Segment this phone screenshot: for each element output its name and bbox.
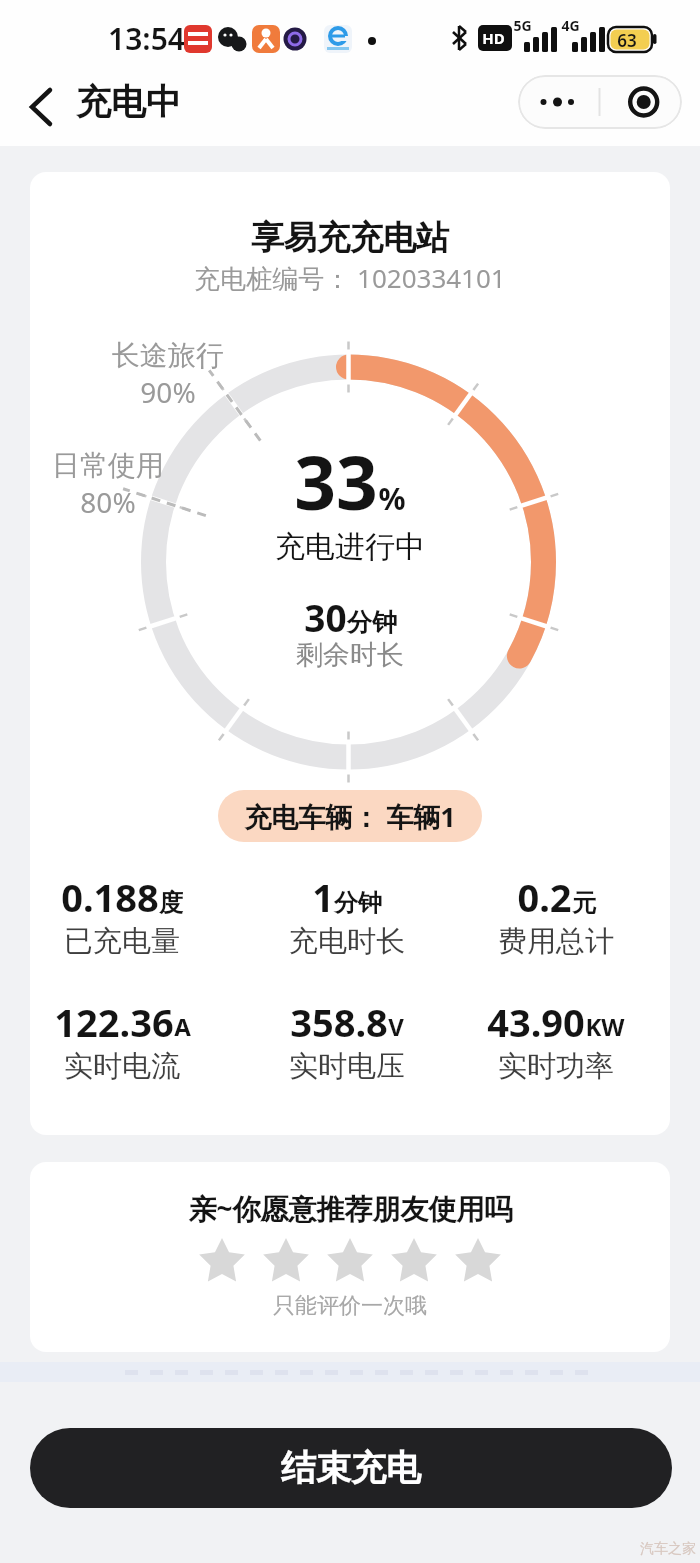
staticText: 汽车之家 (640, 1540, 696, 1558)
staticText: 充电时长 (289, 923, 405, 960)
staticText: 13:54 (108, 18, 185, 59)
staticText: A (174, 1010, 191, 1043)
staticText: 充电进行中 (275, 528, 425, 566)
button[interactable] (28, 88, 54, 126)
button[interactable] (190, 1237, 510, 1287)
staticText: 度 (159, 888, 183, 918)
staticText: 0.2 (517, 871, 572, 923)
staticText: 费用总计 (498, 923, 614, 960)
staticText: 90% (140, 373, 196, 411)
staticText: 亲~你愿意推荐朋友使用吗 (188, 1189, 513, 1227)
button[interactable]: 充电车辆： 车辆1 (218, 790, 482, 842)
staticText: 80% (80, 483, 136, 521)
staticText: 358.8 (290, 996, 388, 1048)
staticText: 充电桩编号： 1020334101 (194, 260, 506, 296)
staticText: 122.36 (54, 996, 174, 1048)
staticText: V (388, 1010, 404, 1043)
staticText: 长途旅行 (112, 338, 224, 373)
staticText: 1 (312, 871, 334, 923)
staticText: 4G (561, 16, 580, 35)
staticText: 日常使用 (52, 448, 164, 483)
staticText: 实时功率 (498, 1048, 614, 1085)
staticText: 33 (294, 432, 378, 531)
staticText: 剩余时长 (296, 638, 404, 672)
staticText: 元 (572, 888, 596, 918)
staticText: 实时电压 (289, 1048, 405, 1085)
staticText: 只能评价一次哦 (273, 1292, 427, 1320)
staticText: HD (482, 28, 505, 48)
staticText: 实时电流 (64, 1048, 180, 1085)
staticText: 结束充电 (281, 1446, 421, 1490)
staticText: 63 (617, 29, 637, 52)
staticText: KW (585, 1010, 625, 1043)
staticText: 享易充充电站 (251, 217, 449, 259)
staticText: 5G (513, 16, 532, 35)
staticText: 分钟 (347, 607, 397, 638)
staticText: 0.188 (61, 871, 159, 923)
staticText: 充电中 (76, 80, 181, 124)
staticText: 分钟 (334, 888, 382, 918)
button[interactable] (518, 75, 682, 129)
button[interactable]: 结束充电 (30, 1428, 672, 1508)
staticText: 已充电量 (64, 923, 180, 960)
staticText: 43.90 (487, 996, 585, 1048)
staticText: 充电车辆： 车辆1 (244, 798, 456, 835)
staticText: % (378, 478, 406, 519)
staticText: 30 (304, 592, 347, 642)
